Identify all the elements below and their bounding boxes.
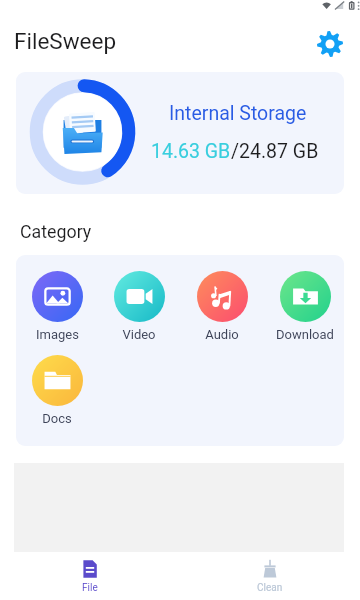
button[interactable]: Video: [98, 271, 180, 342]
button[interactable]: Clean: [180, 552, 360, 600]
staticText: Audio: [205, 327, 239, 342]
button[interactable]: Images: [16, 271, 98, 342]
staticText: 14.63 GB: [151, 140, 231, 163]
button[interactable]: Internal Storage: [16, 72, 344, 194]
staticText: Download: [276, 327, 334, 342]
button[interactable]: Docs: [16, 355, 98, 426]
staticText: Images: [36, 327, 79, 342]
staticText: /24.87 GB: [231, 140, 319, 163]
button[interactable]: Download: [264, 271, 344, 342]
button[interactable]: File: [0, 552, 180, 600]
staticText: File: [82, 582, 98, 594]
button[interactable]: Settings: [317, 31, 343, 57]
staticText: FileSweep: [14, 28, 117, 54]
button[interactable]: Audio: [181, 271, 263, 342]
staticText: Internal Storage: [169, 102, 307, 125]
staticText: Clean: [257, 582, 283, 594]
staticText: Category: [20, 221, 92, 242]
staticText: Video: [122, 327, 156, 342]
staticText: Docs: [42, 411, 72, 426]
